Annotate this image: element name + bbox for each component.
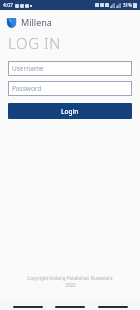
staticText: 2022: [65, 282, 76, 288]
staticText: 31%: [123, 2, 132, 8]
button[interactable]: Navigation: [98, 306, 128, 308]
staticText: LOG IN: [8, 33, 61, 53]
staticText: Millena: [21, 16, 52, 28]
button[interactable]: Password: [8, 81, 132, 96]
button[interactable]: Username: [8, 61, 132, 76]
staticText: 4:07: [3, 2, 13, 9]
staticText: Password: [12, 84, 42, 93]
staticText: Username: [12, 64, 44, 73]
button[interactable]: Navigation: [55, 306, 85, 308]
button[interactable]: Login: [8, 103, 132, 119]
staticText: Login: [61, 107, 79, 116]
staticText: Copyright Kodang Pelabuhan Nusantara: [27, 275, 113, 281]
button[interactable]: Navigation: [13, 306, 43, 308]
